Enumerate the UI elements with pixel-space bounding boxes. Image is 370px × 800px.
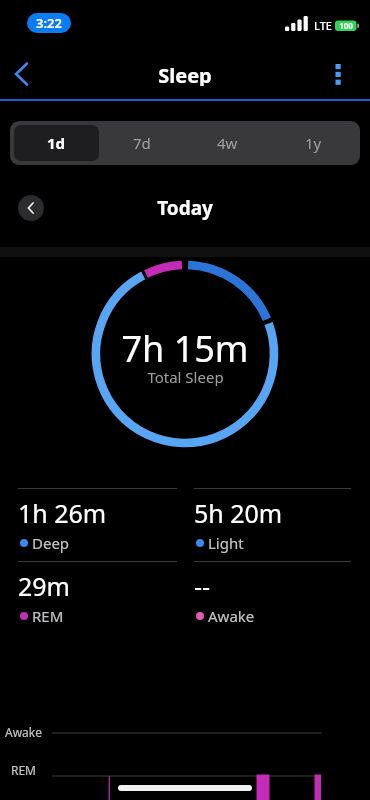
staticText: Today <box>157 195 213 220</box>
button[interactable]: 1h 26m <box>18 488 177 554</box>
button[interactable]: 7d <box>99 125 184 161</box>
staticText: 1h 26m <box>18 496 107 530</box>
staticText: 7d <box>133 133 151 153</box>
staticText: -- <box>194 569 211 603</box>
staticText: Awake <box>208 606 255 626</box>
button[interactable]: 1d <box>14 125 99 161</box>
staticText: 5h 20m <box>194 496 283 530</box>
staticText: Deep <box>32 533 70 553</box>
staticText: 29m <box>18 569 70 603</box>
staticText: 3:22 <box>36 14 62 32</box>
button[interactable]: 29m <box>18 561 177 627</box>
button[interactable]: 5h 20m <box>194 488 351 554</box>
button[interactable]: Today <box>120 195 250 220</box>
staticText: Awake <box>4 724 42 740</box>
staticText: 7h 15m <box>121 324 249 364</box>
button[interactable] <box>18 195 44 221</box>
staticText: REM <box>10 762 36 778</box>
button[interactable]: 3:22 <box>27 13 71 33</box>
staticText: 4w <box>217 133 238 153</box>
staticText: Total Sleep <box>147 367 224 386</box>
button[interactable] <box>4 56 40 92</box>
staticText: REM <box>32 606 64 626</box>
staticText: Sleep <box>158 62 212 86</box>
staticText: LTE <box>314 18 332 33</box>
staticText: 1d <box>47 133 66 153</box>
button[interactable] <box>324 56 360 92</box>
staticText: Light <box>208 533 244 553</box>
staticText: 100 <box>339 20 353 31</box>
button[interactable]: 1y <box>270 125 356 161</box>
button[interactable]: 4w <box>184 125 270 161</box>
button[interactable]: -- <box>194 561 351 627</box>
staticText: 1y <box>305 133 322 153</box>
